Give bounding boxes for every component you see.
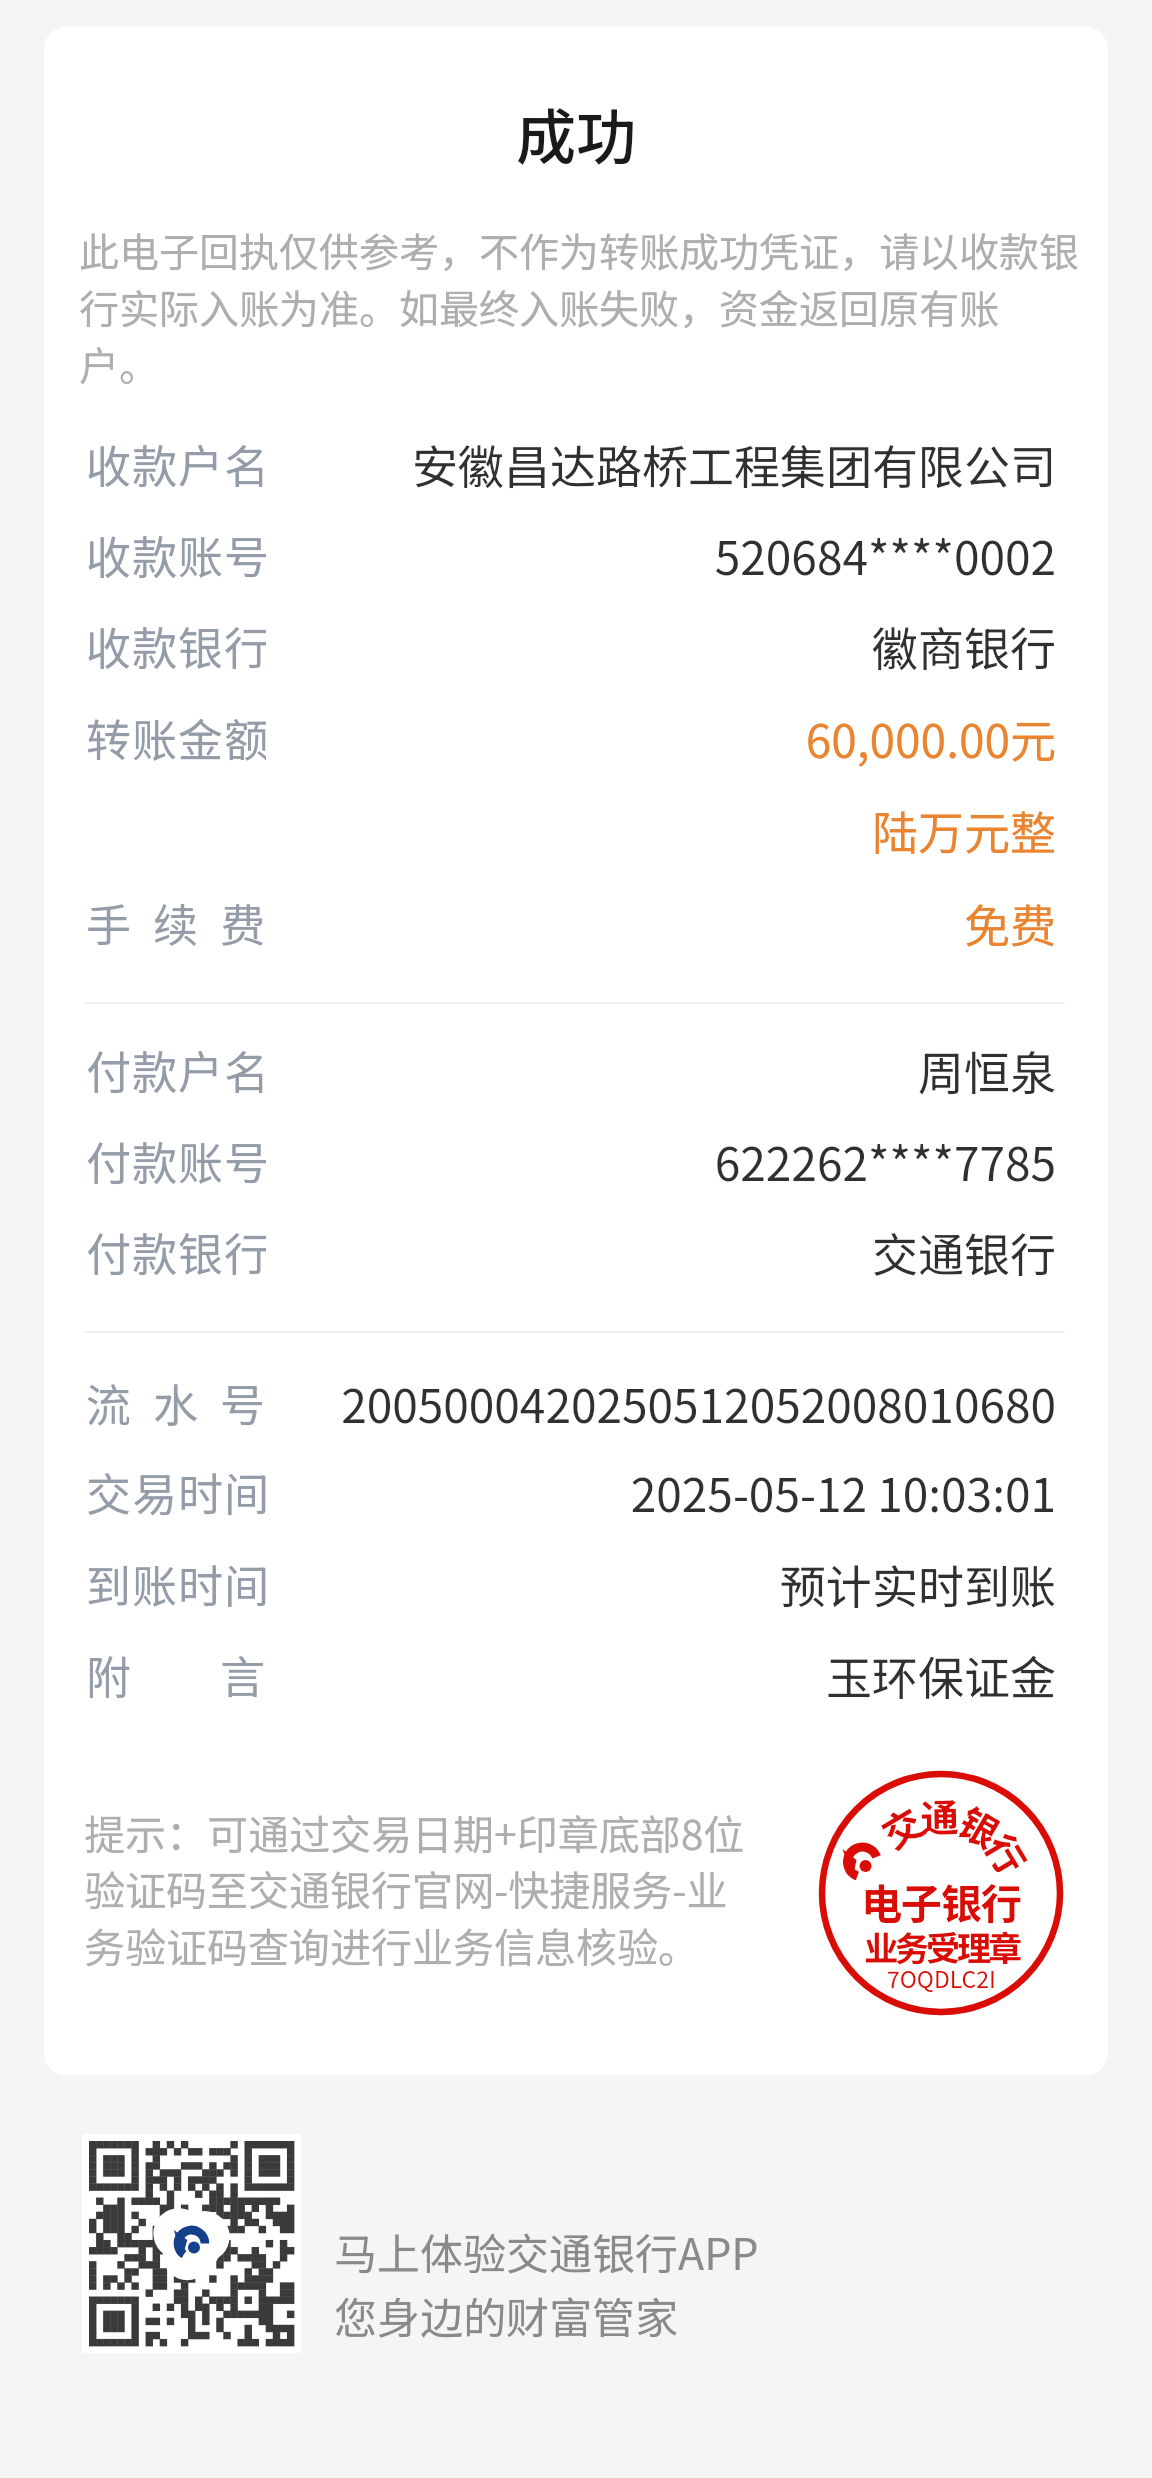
staticText: 安徽昌达路桥工程集团有限公司 (266, 431, 1056, 495)
staticText: 号 (224, 1128, 266, 1192)
button[interactable]: 付 (86, 1037, 1056, 1101)
button[interactable]: 陆万元整 (86, 797, 1056, 861)
staticText: 附 (86, 1642, 132, 1706)
staticText: 额 (224, 705, 266, 769)
staticText: 预计实时到账 (266, 1551, 1056, 1615)
button[interactable]: 付 (86, 1219, 1056, 1283)
staticText: 账 (178, 1128, 224, 1192)
button[interactable]: 收 (86, 522, 1056, 586)
staticText: 号 (224, 522, 266, 586)
staticText: 间 (224, 1459, 266, 1523)
other: 交通银行电子银行业务受理章 (819, 1771, 1063, 2015)
staticText: 款 (132, 1128, 178, 1192)
staticText: 付 (86, 1219, 132, 1283)
staticText: 收 (86, 613, 132, 677)
staticText: 时 (178, 1551, 224, 1615)
button[interactable]: 扫描二维码下载交通银行APP (82, 2134, 301, 2353)
staticText: 交 (871, 1793, 932, 1860)
staticText: 款 (132, 522, 178, 586)
staticText: 交 (86, 1459, 132, 1523)
button[interactable]: 交 (86, 1459, 1056, 1523)
staticText: 款 (132, 613, 178, 677)
button[interactable]: 转 (86, 705, 1056, 769)
button[interactable]: 到 (86, 1551, 1056, 1615)
staticText: 行 (224, 613, 266, 677)
button[interactable]: 收 (86, 613, 1056, 677)
staticText: 您身边的财富管家 (334, 2284, 678, 2346)
staticText: 账 (132, 1551, 178, 1615)
staticText: 名 (224, 1037, 266, 1101)
staticText: 转 (86, 705, 132, 769)
staticText: 易 (132, 1459, 178, 1523)
staticText: 2025-05-12 10:03:01 (266, 1459, 1056, 1523)
staticText: 7OQDLC2I (887, 1961, 996, 1994)
staticText: 账 (132, 705, 178, 769)
staticText: 成功 (516, 89, 636, 176)
staticText: 付 (86, 1037, 132, 1101)
button[interactable]: 流 (86, 1370, 1056, 1434)
staticText: 此电子回执仅供参考，不作为转账成功凭证，请以收款银 行实际入账为准。如最终入账失… (79, 221, 1079, 393)
staticText: 电子银行 (861, 1871, 1021, 1930)
staticText: 手 (86, 890, 132, 954)
staticText: 款 (132, 431, 178, 495)
staticText: 免费 (266, 890, 1056, 954)
staticText: 行 (974, 1823, 1041, 1884)
staticText: 名 (224, 431, 266, 495)
staticText: 水 (153, 1370, 199, 1434)
staticText: 提示：可通过交易日期+印章底部8位验证码至交通银行官网-快捷服务-业务验证码查询… (84, 1802, 756, 1975)
staticText: 马上体验交通银行APP (334, 2220, 759, 2282)
staticText: 时 (178, 1459, 224, 1523)
button[interactable]: 收 (86, 431, 1056, 495)
staticText: 业务受理章 (864, 1922, 1019, 1971)
staticText: 流 (86, 1370, 132, 1434)
staticText: 续 (153, 890, 199, 954)
button[interactable]: 付 (86, 1128, 1056, 1192)
staticText: 费 (220, 890, 266, 954)
staticText: 金 (178, 705, 224, 769)
staticText: 60,000.00元 (266, 705, 1056, 769)
staticText: 言 (220, 1642, 266, 1706)
staticText: 徽商银行 (266, 613, 1056, 677)
staticText: 周恒泉 (266, 1037, 1056, 1101)
staticText: 付 (86, 1128, 132, 1192)
staticText: 银 (178, 1219, 224, 1283)
staticText: 间 (224, 1551, 266, 1615)
staticText: 玉环保证金 (266, 1642, 1056, 1706)
staticText: 到 (86, 1551, 132, 1615)
staticText: 款 (132, 1037, 178, 1101)
staticText: 银 (178, 613, 224, 677)
staticText: 号 (220, 1370, 266, 1434)
staticText: 通 (920, 1788, 960, 1843)
staticText: 行 (224, 1219, 266, 1283)
staticText: 账 (178, 522, 224, 586)
staticText: 银 (949, 1793, 1011, 1860)
staticText: 收 (86, 522, 132, 586)
button[interactable]: 附 (86, 1642, 1056, 1706)
staticText: 陆万元整 (86, 797, 1056, 861)
staticText: 交通银行 (266, 1219, 1056, 1283)
staticText: 户 (178, 431, 224, 495)
staticText: 款 (132, 1219, 178, 1283)
button[interactable]: 手 (86, 890, 1056, 954)
staticText: 2005000420250512052008010680 (266, 1370, 1056, 1434)
staticText: 户 (178, 1037, 224, 1101)
staticText: 收 (86, 431, 132, 495)
staticText: 520684****0002 (266, 522, 1056, 586)
staticText: 622262****7785 (266, 1128, 1056, 1192)
